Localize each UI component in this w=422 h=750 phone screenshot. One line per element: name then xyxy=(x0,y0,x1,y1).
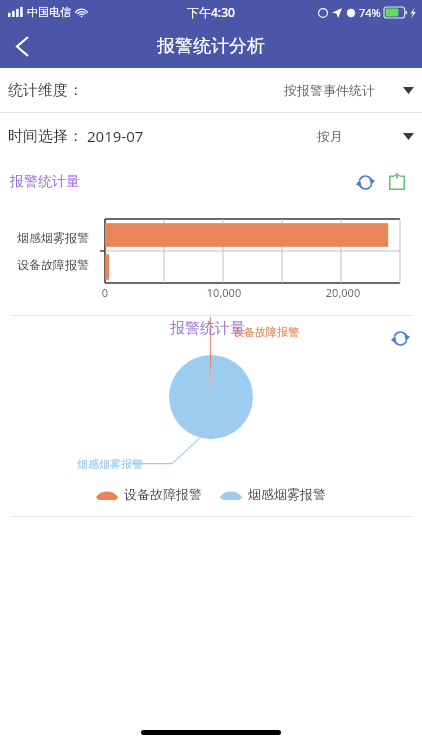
staticText: 中国电信 xyxy=(27,5,71,19)
button[interactable]: 时间选择： xyxy=(0,113,422,159)
staticText: 按月 xyxy=(317,128,343,144)
staticText: 设备故障报警 xyxy=(17,257,89,272)
staticText: 烟感烟雾报警 xyxy=(17,230,89,245)
button[interactable]: Refresh xyxy=(350,167,380,197)
staticText: 报警统计量 xyxy=(170,319,245,338)
staticText: 报警统计量 xyxy=(10,173,80,191)
button[interactable]: Refresh chart xyxy=(386,324,414,352)
staticText: 设备故障报警 xyxy=(233,325,299,339)
button[interactable]: 统计维度： xyxy=(0,68,422,112)
staticText: 下午4:30 xyxy=(187,4,235,20)
button[interactable]: 设备故障报警 xyxy=(96,486,202,502)
staticText: 按报警事件统计 xyxy=(284,82,375,98)
staticText: 10,000 xyxy=(194,285,254,300)
button[interactable]: Export xyxy=(382,167,412,197)
staticText: 20,000 xyxy=(313,285,373,300)
staticText: 设备故障报警 xyxy=(124,486,202,502)
staticText: 0 xyxy=(75,285,135,300)
staticText: 74% xyxy=(359,5,381,20)
staticText: 2019-07 xyxy=(87,126,144,146)
staticText: 统计维度： xyxy=(8,81,83,100)
staticText: 烟感烟雾报警 xyxy=(77,457,143,471)
button[interactable]: Back xyxy=(0,24,44,68)
button[interactable]: 烟感烟雾报警 xyxy=(220,486,326,502)
staticText: 烟感烟雾报警 xyxy=(248,486,326,502)
staticText: 报警统计分析 xyxy=(157,35,265,58)
staticText: 时间选择： xyxy=(8,127,83,146)
